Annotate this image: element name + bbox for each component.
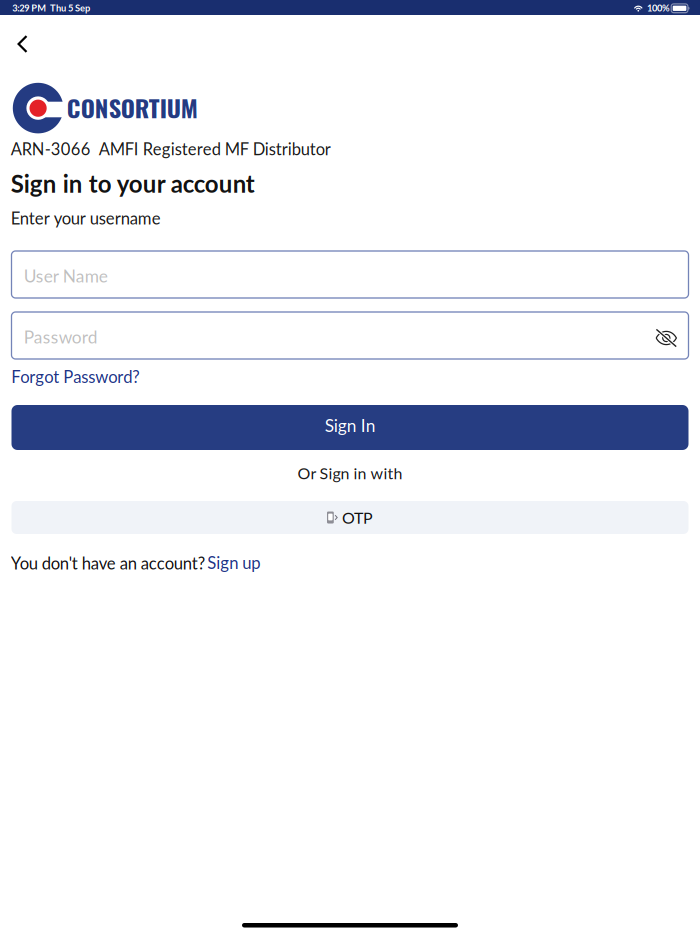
staticText: Or Sign in with — [297, 463, 402, 483]
staticText: OTP — [342, 508, 373, 527]
staticText: Thu 5 Sep — [50, 2, 90, 14]
staticText: Sign up — [207, 553, 260, 573]
staticText: Sign In — [325, 415, 376, 436]
button[interactable]: OTP — [11, 501, 688, 534]
staticText: User Name — [24, 265, 108, 286]
staticText: Sign in to your account — [11, 169, 255, 198]
staticText: You don't have an account? — [11, 553, 205, 573]
staticText: Enter your username — [11, 208, 161, 228]
button[interactable]: Show password — [649, 321, 683, 355]
staticText: 100% — [647, 2, 670, 14]
staticText: Password — [24, 326, 98, 347]
button[interactable]: Sign In — [11, 405, 688, 450]
staticText: 3:29 PM — [12, 2, 46, 14]
staticText: Forgot Password? — [11, 366, 139, 386]
button[interactable]: Back — [0, 9, 46, 53]
button[interactable]: Sign up — [207, 551, 263, 571]
button[interactable]: Forgot Password? — [11, 364, 141, 384]
staticText: ARN-3066 AMFI Registered MF Distributor — [11, 139, 331, 159]
staticText: CONSORTIUM — [67, 89, 198, 125]
